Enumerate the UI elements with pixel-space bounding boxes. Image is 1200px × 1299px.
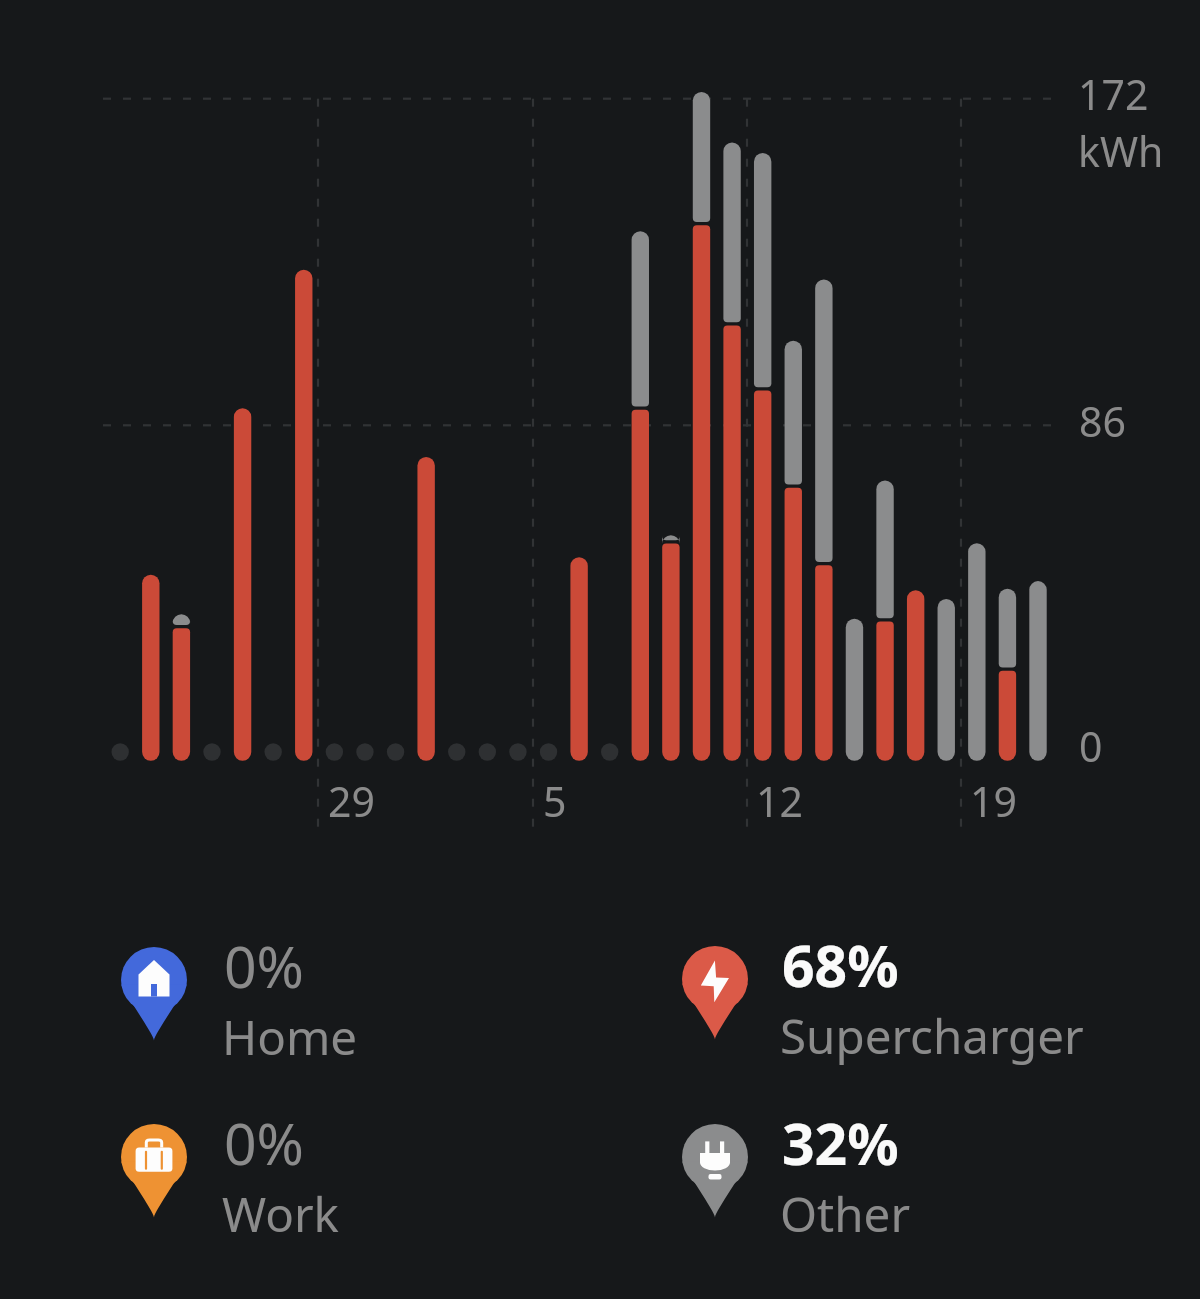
staticText: Home bbox=[222, 1004, 358, 1069]
staticText: Work bbox=[222, 1181, 339, 1246]
staticText: 68% bbox=[782, 926, 899, 1004]
button[interactable]: Home bbox=[111, 925, 511, 1055]
button[interactable]: Supercharger bbox=[672, 924, 1072, 1054]
staticText: 32% bbox=[782, 1104, 899, 1182]
staticText: 86 bbox=[1079, 393, 1126, 449]
staticText: Other bbox=[780, 1181, 911, 1246]
other: Home bbox=[121, 947, 187, 1043]
staticText: 29 bbox=[328, 773, 375, 829]
staticText: kWh bbox=[1078, 123, 1164, 179]
staticText: 12 bbox=[756, 773, 803, 829]
other: Work bbox=[121, 1124, 187, 1220]
staticText: 0 bbox=[1079, 718, 1103, 774]
button[interactable]: Other bbox=[672, 1102, 1072, 1232]
staticText: 0% bbox=[224, 1104, 304, 1182]
other: Supercharger bbox=[682, 946, 748, 1042]
staticText: 5 bbox=[543, 773, 567, 829]
staticText: Supercharger bbox=[780, 1003, 1084, 1068]
button[interactable]: Work bbox=[111, 1102, 511, 1232]
staticText: 172 bbox=[1078, 66, 1149, 122]
staticText: 19 bbox=[970, 773, 1017, 829]
staticText: 0% bbox=[224, 927, 304, 1005]
other: Other bbox=[682, 1124, 748, 1220]
